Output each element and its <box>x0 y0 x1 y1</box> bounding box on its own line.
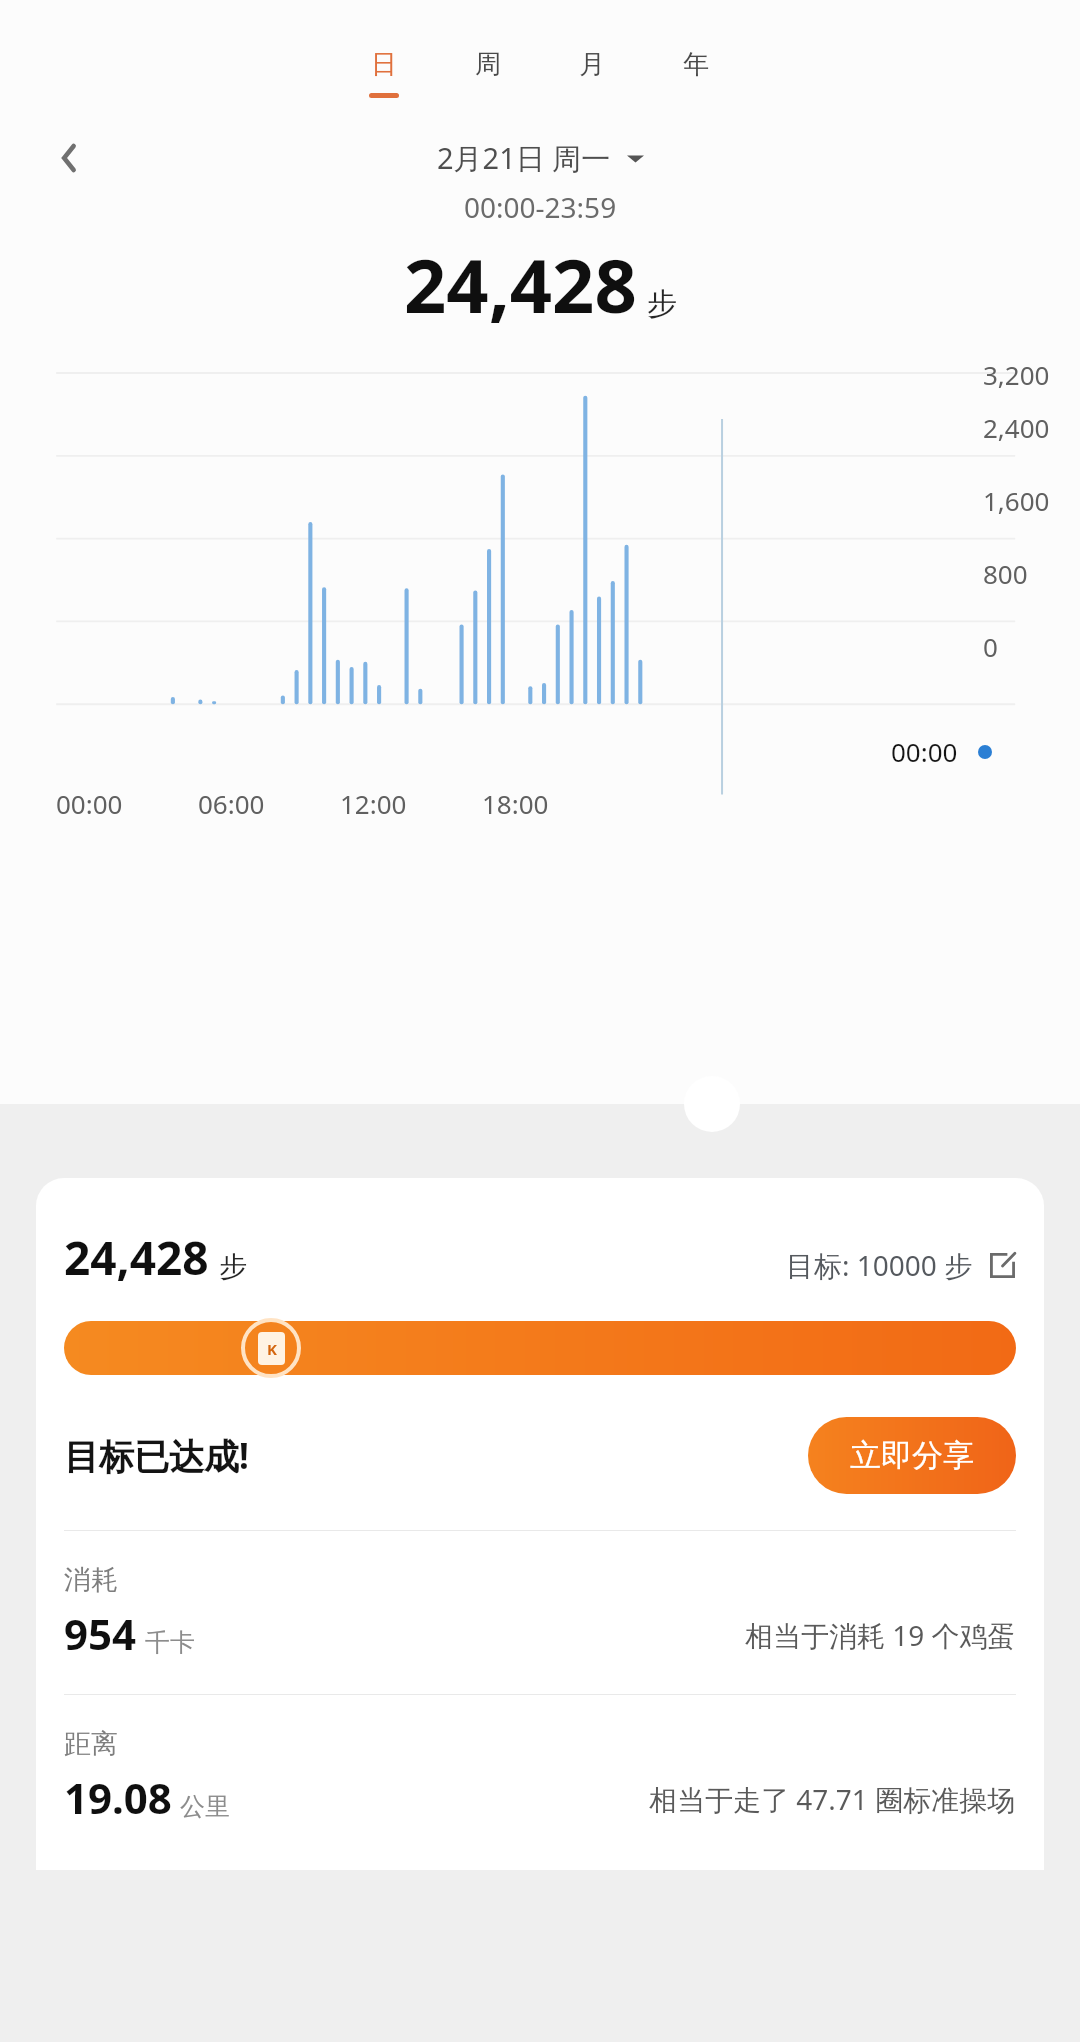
button[interactable]: 消耗 <box>64 1563 1016 1662</box>
staticText: 954 <box>64 1605 137 1662</box>
staticText: 2,400 <box>983 410 1050 445</box>
staticText: 18:00 <box>482 786 549 821</box>
staticText: 2月21日 周一 <box>437 138 611 178</box>
staticText: 00:00 <box>56 786 123 821</box>
button[interactable]: 月 <box>568 48 616 98</box>
staticText: 步 <box>219 1249 247 1284</box>
staticText: 0 <box>983 629 998 664</box>
staticText: 800 <box>983 556 1028 591</box>
staticText: 年 <box>683 48 709 81</box>
button[interactable]: 周 <box>464 48 512 98</box>
button[interactable]: 2月21日 周一 <box>437 138 644 178</box>
staticText: 目标: 10000 步 <box>786 1246 973 1284</box>
staticText: 12:00 <box>340 786 407 821</box>
staticText: 相当于走了 47.71 圈标准操场 <box>649 1780 1016 1818</box>
staticText: 立即分享 <box>850 1436 974 1475</box>
button[interactable]: Drag handle <box>684 1076 740 1132</box>
staticText: 00:00 <box>891 734 958 769</box>
button[interactable]: 距离 <box>64 1727 1016 1826</box>
staticText: 相当于消耗 19 个鸡蛋 <box>745 1616 1016 1654</box>
staticText: 06:00 <box>198 786 265 821</box>
button[interactable]: 立即分享 <box>808 1417 1016 1494</box>
staticText: 周 <box>475 48 501 81</box>
staticText: K <box>267 1339 277 1359</box>
staticText: 24,428 <box>64 1226 209 1289</box>
staticText: 消耗 <box>64 1563 118 1597</box>
staticText: 距离 <box>64 1727 118 1761</box>
staticText: 公里 <box>180 1791 230 1822</box>
staticText: 目标已达成! <box>64 1432 249 1480</box>
staticText: 步 <box>647 285 677 323</box>
button[interactable]: 年 <box>672 48 720 98</box>
staticText: 1,600 <box>983 483 1050 518</box>
staticText: 24,428 <box>404 234 637 335</box>
button[interactable]: Previous day <box>42 134 90 182</box>
staticText: 千卡 <box>145 1627 195 1658</box>
button[interactable]: Step progress <box>64 1317 1016 1379</box>
button[interactable]: 目标: 10000 步 <box>786 1246 1016 1289</box>
other: Edit goal <box>989 1252 1016 1279</box>
button[interactable]: 日 <box>360 48 408 98</box>
staticText: 月 <box>579 48 605 81</box>
staticText: 3,200 <box>983 357 1050 391</box>
staticText: 00:00-23:59 <box>464 188 617 226</box>
staticText: 19.08 <box>64 1769 172 1826</box>
staticText: 日 <box>371 48 397 81</box>
